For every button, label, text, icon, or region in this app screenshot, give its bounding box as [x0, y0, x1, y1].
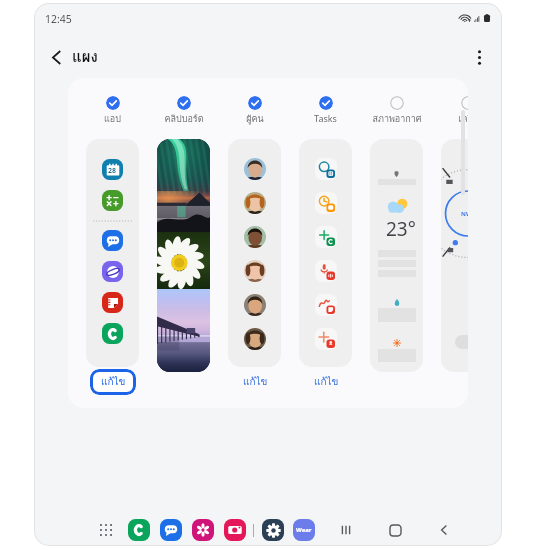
- button[interactable]: [160, 519, 182, 541]
- button[interactable]: Recents: [331, 515, 361, 545]
- button[interactable]: [315, 260, 337, 282]
- button[interactable]: More options: [463, 41, 495, 73]
- button[interactable]: [315, 158, 337, 180]
- staticText: แก้ไข: [243, 374, 268, 390]
- button[interactable]: [102, 190, 123, 211]
- button[interactable]: 23°: [370, 139, 423, 372]
- button[interactable]: Tasks: [319, 96, 333, 110]
- button[interactable]: [315, 192, 337, 214]
- staticText: Tasks: [314, 112, 337, 124]
- button[interactable]: Back: [40, 41, 72, 73]
- button[interactable]: แก้ไข: [303, 369, 349, 395]
- button[interactable]: แก้ไข: [90, 369, 136, 395]
- button[interactable]: [299, 139, 352, 367]
- staticText: แผง: [72, 45, 98, 69]
- button[interactable]: เครื่อ: [461, 96, 468, 110]
- button[interactable]: [244, 294, 266, 316]
- staticText: Wear: [296, 526, 312, 534]
- button[interactable]: [102, 292, 123, 313]
- button[interactable]: 28: [86, 139, 139, 367]
- button[interactable]: NW: [441, 139, 468, 372]
- button[interactable]: [315, 294, 337, 316]
- button[interactable]: [244, 226, 266, 248]
- button[interactable]: [244, 158, 266, 180]
- staticText: คลิปบอร์ด: [164, 112, 204, 126]
- button[interactable]: สภาพอากาศ: [390, 96, 404, 110]
- button[interactable]: [192, 519, 214, 541]
- button[interactable]: [224, 519, 246, 541]
- staticText: 12:45: [45, 12, 72, 26]
- button[interactable]: [128, 519, 150, 541]
- button[interactable]: All apps: [95, 519, 117, 541]
- button[interactable]: [315, 328, 337, 350]
- button[interactable]: Home: [380, 515, 410, 545]
- staticText: 28: [108, 166, 117, 176]
- button[interactable]: [102, 323, 123, 344]
- staticText: 23°: [386, 216, 416, 242]
- button[interactable]: [315, 226, 337, 248]
- button[interactable]: Back: [429, 515, 459, 545]
- button[interactable]: [157, 139, 210, 372]
- button[interactable]: [244, 192, 266, 214]
- button[interactable]: ผู้คน: [248, 96, 262, 110]
- staticText: สภาพอากาศ: [372, 112, 422, 126]
- staticText: แอป: [104, 112, 121, 126]
- button[interactable]: [102, 261, 123, 282]
- button[interactable]: [244, 260, 266, 282]
- staticText: ผู้คน: [246, 112, 264, 126]
- button[interactable]: คลิปบอร์ด: [177, 96, 191, 110]
- button[interactable]: [262, 519, 284, 541]
- button[interactable]: Wear: [293, 519, 315, 541]
- staticText: แก้ไข: [101, 374, 126, 390]
- button[interactable]: [244, 328, 266, 350]
- button[interactable]: 28: [102, 159, 123, 180]
- button[interactable]: แก้ไข: [232, 369, 278, 395]
- staticText: แก้ไข: [314, 374, 339, 390]
- staticText: NW: [461, 210, 468, 218]
- button[interactable]: [102, 230, 123, 251]
- button[interactable]: [228, 139, 281, 367]
- button[interactable]: แอป: [106, 96, 120, 110]
- staticText: เครื่อ: [458, 112, 468, 126]
